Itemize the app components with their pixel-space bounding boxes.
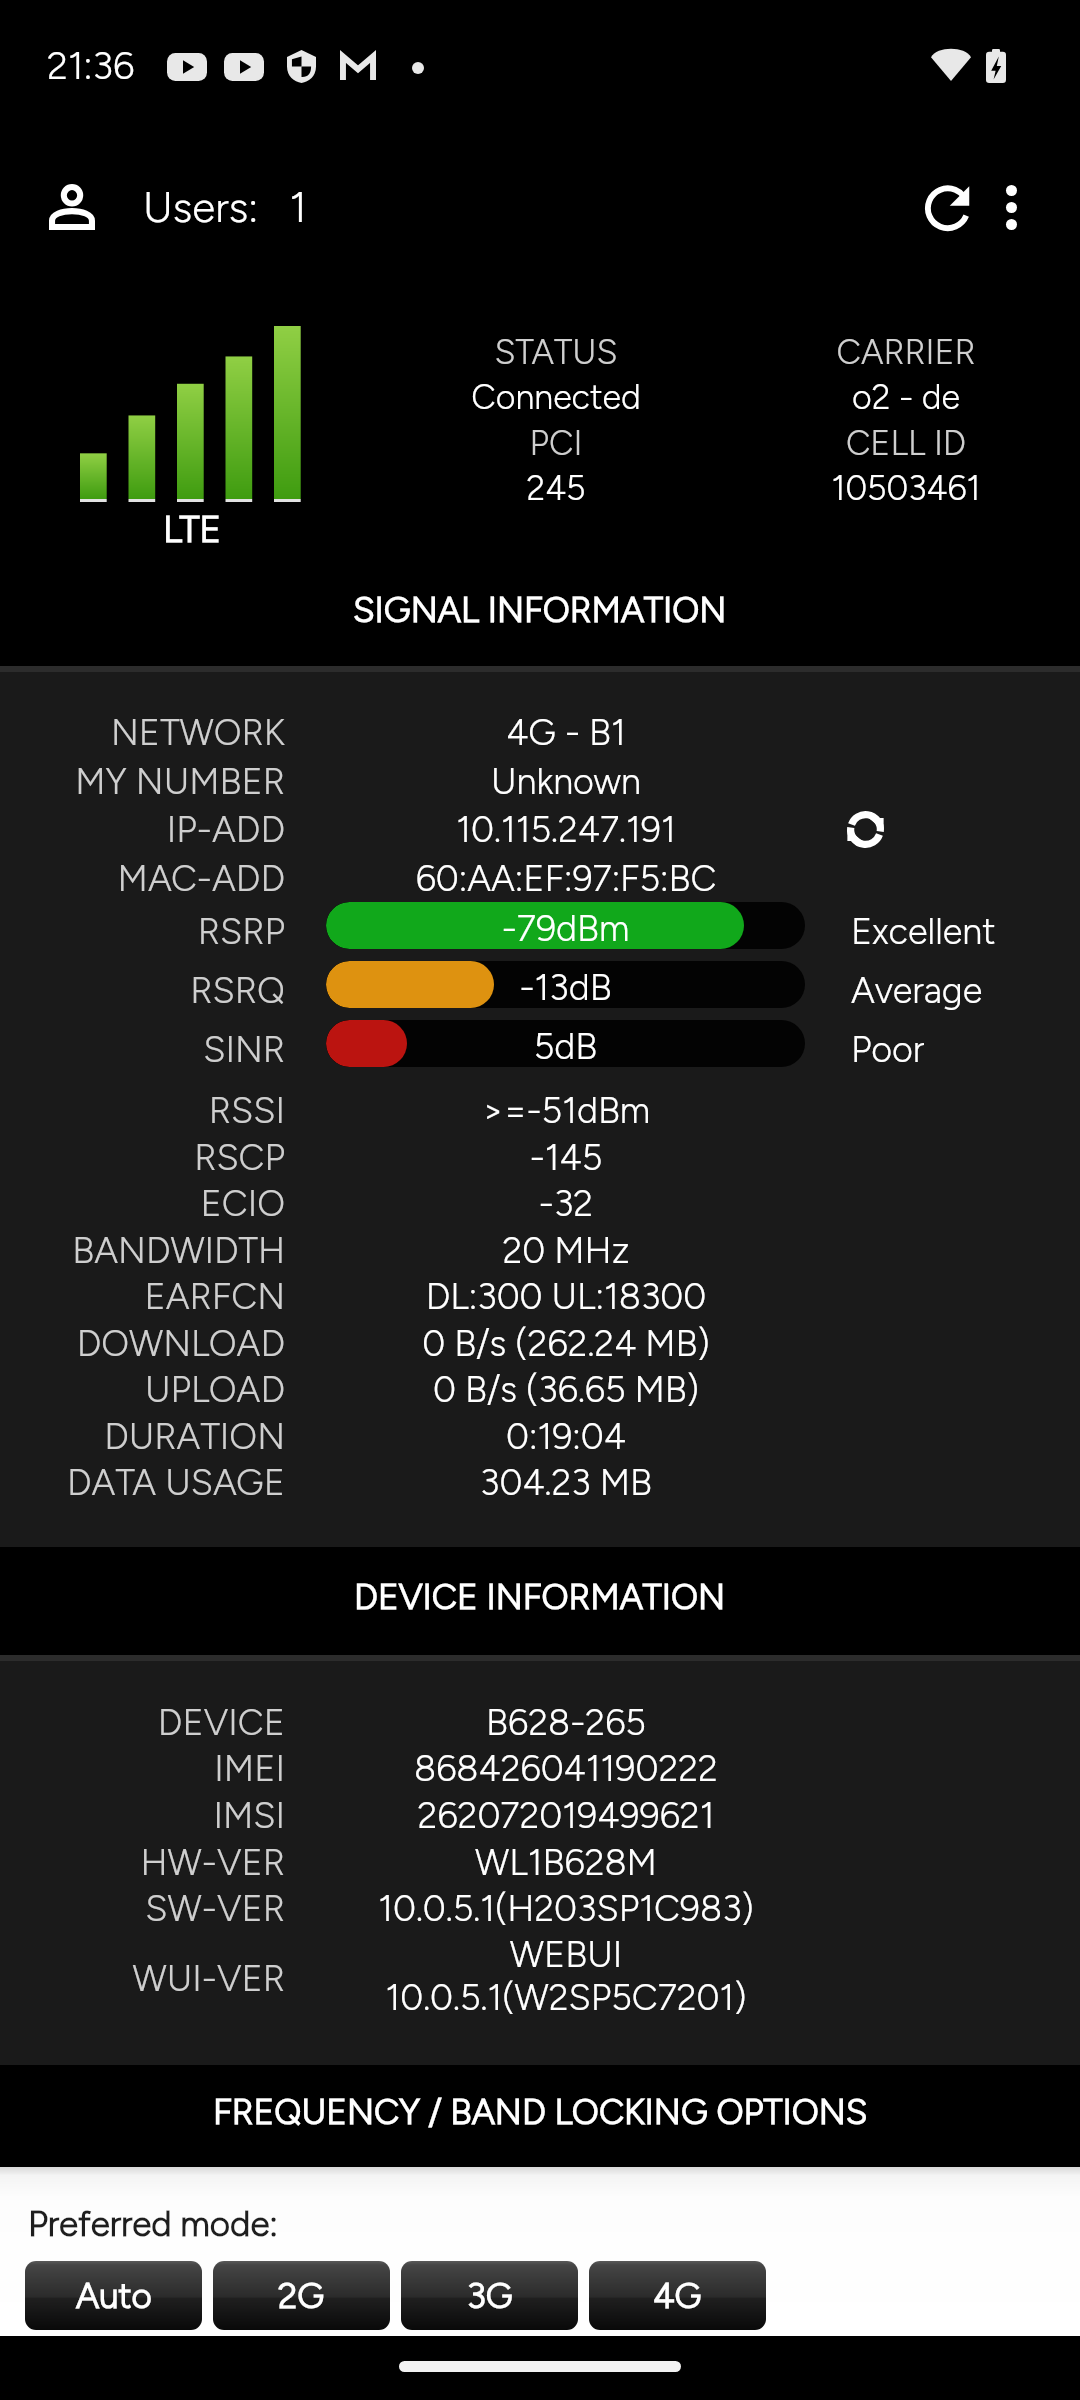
- staticText: -79dBm: [326, 907, 805, 949]
- staticText: HW-VER: [0, 1841, 285, 1884]
- staticText: 0 B/s (262.24 MB): [286, 1322, 846, 1365]
- staticText: o2 - de: [731, 377, 1080, 418]
- staticText: -145: [286, 1136, 846, 1179]
- button[interactable]: More options: [966, 162, 1056, 252]
- staticText: 262072019499621: [286, 1794, 846, 1837]
- staticText: WUI-VER: [0, 1957, 285, 2000]
- staticText: -32: [286, 1182, 846, 1225]
- staticText: FREQUENCY / BAND LOCKING OPTIONS: [213, 2091, 868, 2133]
- staticText: EARFCN: [0, 1275, 285, 1318]
- staticText: DATA USAGE: [0, 1461, 285, 1504]
- staticText: Connected: [381, 377, 731, 418]
- button[interactable]: Users: 1: [49, 182, 307, 232]
- staticText: SINR: [0, 1028, 285, 1071]
- staticText: MY NUMBER: [0, 760, 285, 803]
- staticText: MAC-ADD: [0, 857, 285, 900]
- staticText: -13dB: [326, 966, 805, 1008]
- staticText: ECIO: [0, 1182, 285, 1225]
- staticText: DL:300 UL:18300: [286, 1275, 846, 1318]
- button[interactable]: Refresh: [902, 158, 998, 254]
- staticText: 304.23 MB: [286, 1461, 846, 1504]
- staticText: 0 B/s (36.65 MB): [286, 1368, 846, 1411]
- staticText: 868426041190222: [286, 1747, 846, 1790]
- staticText: 4G - B1: [286, 711, 846, 754]
- staticText: BANDWIDTH: [0, 1229, 285, 1272]
- button[interactable]: 4G: [589, 2261, 766, 2330]
- staticText: Users: 1: [143, 182, 307, 232]
- staticText: Poor: [851, 1028, 925, 1071]
- staticText: CARRIER: [731, 332, 1080, 373]
- staticText: 4G: [653, 2275, 702, 2317]
- staticText: 21:36: [47, 43, 135, 89]
- staticText: IP-ADD: [0, 808, 285, 851]
- staticText: CELL ID: [731, 423, 1080, 464]
- staticText: Excellent: [851, 910, 996, 953]
- staticText: 10503461: [731, 468, 1080, 509]
- staticText: STATUS: [381, 332, 731, 373]
- staticText: 20 MHz: [286, 1229, 846, 1272]
- staticText: DOWNLOAD: [0, 1322, 285, 1365]
- staticText: 3G: [467, 2275, 513, 2317]
- staticText: DEVICE: [0, 1701, 285, 1744]
- staticText: 245: [381, 468, 731, 509]
- staticText: LTE: [163, 507, 222, 551]
- staticText: 0:19:04: [286, 1415, 846, 1458]
- button[interactable]: Refresh IP address: [815, 779, 915, 879]
- button[interactable]: Auto: [25, 2261, 202, 2330]
- staticText: 10.0.5.1(H203SP1C983): [286, 1887, 846, 1930]
- staticText: RSRQ: [0, 969, 285, 1012]
- staticText: Auto: [76, 2275, 152, 2317]
- staticText: SIGNAL INFORMATION: [353, 589, 727, 631]
- staticText: 10.115.247.191: [286, 808, 846, 851]
- staticText: 5dB: [326, 1025, 805, 1067]
- staticText: Preferred mode:: [28, 2203, 278, 2245]
- staticText: NETWORK: [0, 711, 285, 754]
- staticText: DURATION: [0, 1415, 285, 1458]
- button[interactable]: 3G: [401, 2261, 578, 2330]
- staticText: PCI: [381, 423, 731, 464]
- staticText: UPLOAD: [0, 1368, 285, 1411]
- staticText: RSSI: [0, 1089, 285, 1132]
- staticText: SW-VER: [0, 1887, 285, 1930]
- staticText: WL1B628M: [286, 1841, 846, 1884]
- staticText: 10.0.5.1(W2SP5C7201): [286, 1976, 846, 2019]
- staticText: RSRP: [0, 910, 285, 953]
- staticText: Unknown: [286, 760, 846, 803]
- staticText: >=-51dBm: [286, 1089, 846, 1132]
- button[interactable]: 2G: [213, 2261, 390, 2330]
- staticText: Average: [851, 969, 983, 1012]
- staticText: 2G: [278, 2275, 325, 2317]
- staticText: DEVICE INFORMATION: [354, 1576, 726, 1618]
- staticText: IMSI: [0, 1794, 285, 1837]
- staticText: IMEI: [0, 1747, 285, 1790]
- staticText: 60:AA:EF:97:F5:BC: [286, 857, 846, 900]
- staticText: RSCP: [0, 1136, 285, 1179]
- staticText: WEBUI: [286, 1933, 846, 1976]
- staticText: B628-265: [286, 1701, 846, 1744]
